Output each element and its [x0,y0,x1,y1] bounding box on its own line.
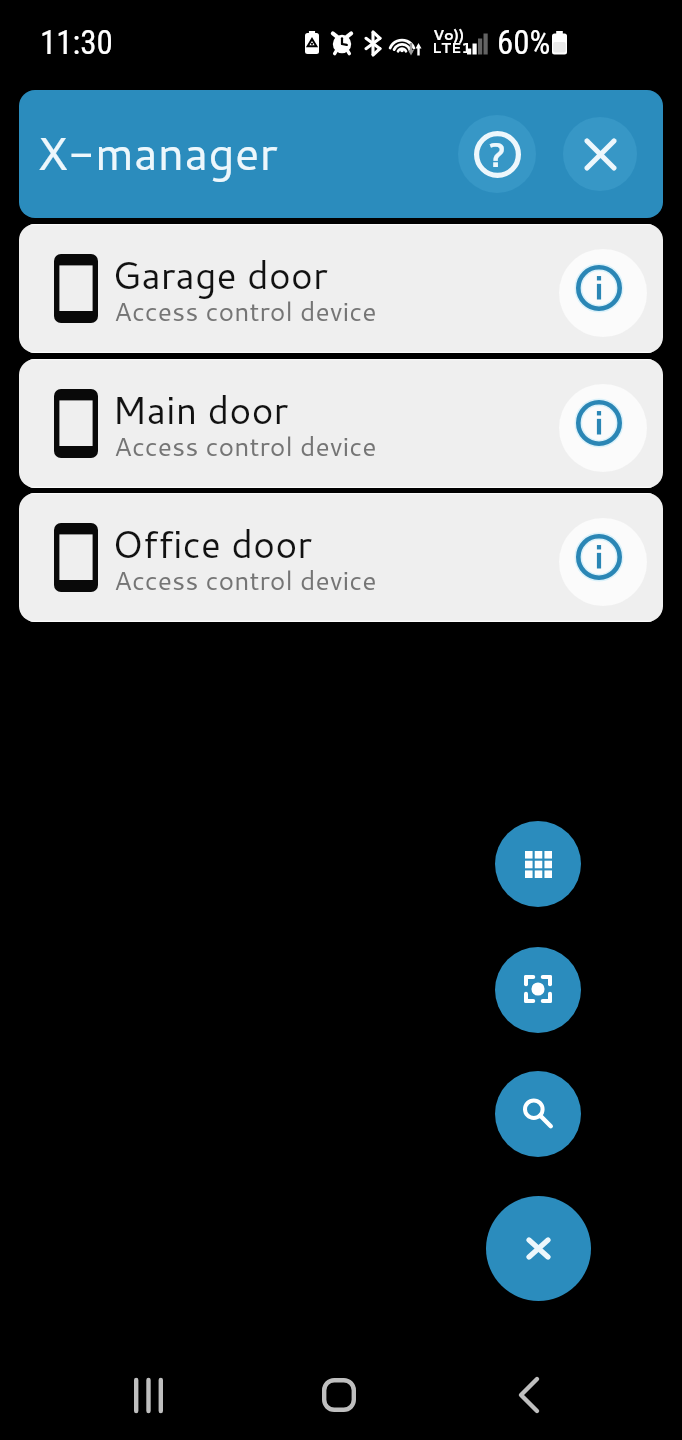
button[interactable]: Home [294,1350,384,1440]
staticText: ? [489,130,506,177]
staticText: Garage door [112,248,328,301]
staticText: 60% [497,23,551,62]
button[interactable]: Info [559,249,647,337]
button[interactable]: Main door [19,359,663,488]
button[interactable]: Close [563,117,637,191]
staticText: Office door [112,517,313,570]
staticText: Access control device [114,292,377,330]
staticText: Vo)) [433,24,465,45]
staticText: X-manager [37,120,278,185]
staticText: 11:30 [40,23,113,62]
button[interactable]: Dismiss [486,1196,591,1301]
button[interactable]: Help [458,115,536,193]
staticText: Access control device [114,427,377,465]
button[interactable]: Back [484,1350,574,1440]
staticText: Access control device [114,561,377,599]
button[interactable]: Info [559,518,647,606]
button[interactable]: Recents [103,1350,193,1440]
button[interactable]: Search [495,1071,581,1157]
button[interactable]: Garage door [19,224,663,353]
button[interactable]: Apps [495,821,581,907]
button[interactable]: Office door [19,493,663,622]
staticText: Main door [112,383,289,436]
staticText: LTE1 [432,37,472,58]
button[interactable]: Scan [495,947,581,1033]
button[interactable]: Info [559,384,647,472]
